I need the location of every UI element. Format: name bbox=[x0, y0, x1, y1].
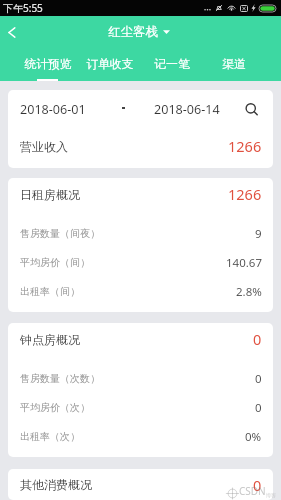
staticText: 博客 bbox=[266, 492, 276, 498]
staticText: 9 bbox=[255, 226, 262, 242]
button[interactable]: 红尘客栈 bbox=[108, 24, 170, 40]
button[interactable]: Search bbox=[242, 100, 262, 120]
staticText: 售房数量（间夜） bbox=[20, 227, 100, 240]
staticText: 1266 bbox=[228, 136, 262, 156]
staticText: 0 bbox=[255, 400, 262, 416]
button[interactable]: 2018-06-14 bbox=[154, 101, 220, 118]
button[interactable]: 2018-06-01 bbox=[20, 101, 86, 118]
button[interactable]: 统计预览 bbox=[16, 48, 79, 81]
staticText: 下午5:55 bbox=[3, 1, 43, 15]
staticText: 出租率（间） bbox=[20, 285, 80, 298]
staticText: 渠道 bbox=[222, 57, 246, 72]
staticText: 2018-06-14 bbox=[154, 101, 220, 118]
button[interactable]: Back bbox=[0, 16, 24, 48]
staticText: 0 bbox=[253, 475, 262, 495]
staticText: 0% bbox=[245, 429, 262, 445]
staticText: 平均房价（次） bbox=[20, 401, 90, 414]
staticText: CSDN bbox=[239, 484, 266, 498]
staticText: 2018-06-01 bbox=[20, 101, 86, 118]
button[interactable]: 渠道 bbox=[203, 48, 265, 81]
staticText: 日租房概况 bbox=[20, 187, 80, 202]
staticText: 钟点房概况 bbox=[20, 332, 80, 347]
staticText: 统计预览 bbox=[24, 57, 72, 72]
staticText: 营业收入 bbox=[20, 139, 68, 154]
staticText: 订单收支 bbox=[86, 57, 134, 72]
staticText: 其他消费概况 bbox=[20, 477, 92, 492]
staticText: 平均房价（间） bbox=[20, 256, 90, 269]
staticText: 出租率（次） bbox=[20, 430, 80, 443]
button[interactable]: 订单收支 bbox=[79, 48, 141, 81]
staticText: 0 bbox=[255, 371, 262, 387]
staticText: 0 bbox=[253, 329, 262, 349]
staticText: 2.8% bbox=[236, 284, 262, 300]
staticText: 140.67 bbox=[226, 255, 262, 271]
staticText: 售房数量（次数） bbox=[20, 372, 100, 385]
staticText: 记一笔 bbox=[154, 57, 190, 72]
button[interactable]: 记一笔 bbox=[141, 48, 203, 81]
staticText: 红尘客栈 bbox=[108, 24, 158, 40]
staticText: 1266 bbox=[228, 184, 262, 204]
